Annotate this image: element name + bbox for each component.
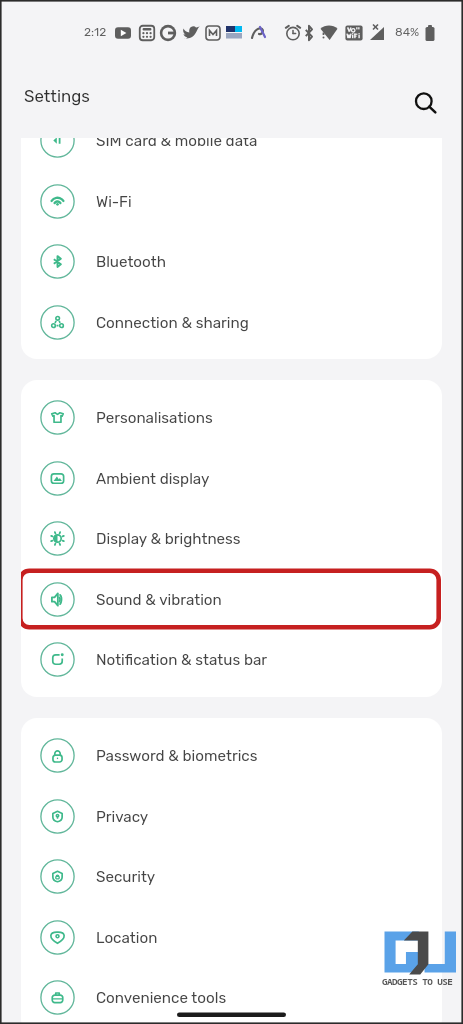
staticText: Wi-Fi xyxy=(96,193,132,211)
button[interactable]: Security xyxy=(21,846,442,907)
staticText: Display & brightness xyxy=(96,530,241,548)
button[interactable]: Display & brightness xyxy=(21,508,442,569)
staticText: Sound & vibration xyxy=(96,591,222,609)
button[interactable]: SIM card & mobile data xyxy=(21,138,442,171)
button[interactable]: Privacy xyxy=(21,786,442,847)
staticText: Bluetooth xyxy=(96,253,166,271)
button[interactable]: Sound & vibration xyxy=(21,569,442,630)
staticText: Settings xyxy=(24,86,90,106)
button[interactable]: Bluetooth xyxy=(21,231,442,292)
staticText: Privacy xyxy=(96,808,149,826)
staticText: Connection & sharing xyxy=(96,314,249,332)
staticText: 84% xyxy=(395,25,420,39)
button[interactable]: Convenience tools xyxy=(21,967,442,1024)
staticText: Personalisations xyxy=(96,409,213,427)
button[interactable]: Location xyxy=(21,907,442,968)
button[interactable]: Connection & sharing xyxy=(21,292,442,353)
button[interactable]: Ambient display xyxy=(21,448,442,509)
button[interactable]: Personalisations xyxy=(21,387,442,448)
staticText: Ambient display xyxy=(96,470,210,488)
staticText: Password & biometrics xyxy=(96,747,258,765)
button[interactable]: Notification & status bar xyxy=(21,629,442,690)
button[interactable]: Search xyxy=(404,82,448,126)
staticText: Notification & status bar xyxy=(96,651,268,669)
staticText: Security xyxy=(96,868,156,886)
staticText: SIM card & mobile data xyxy=(96,138,258,150)
staticText: Convenience tools xyxy=(96,989,227,1007)
staticText: GADGETS TO USE xyxy=(382,975,453,988)
button[interactable]: Password & biometrics xyxy=(21,725,442,786)
staticText: Location xyxy=(96,929,158,947)
button[interactable]: Wi-Fi xyxy=(21,171,442,232)
staticText: 2:12 xyxy=(84,25,107,39)
